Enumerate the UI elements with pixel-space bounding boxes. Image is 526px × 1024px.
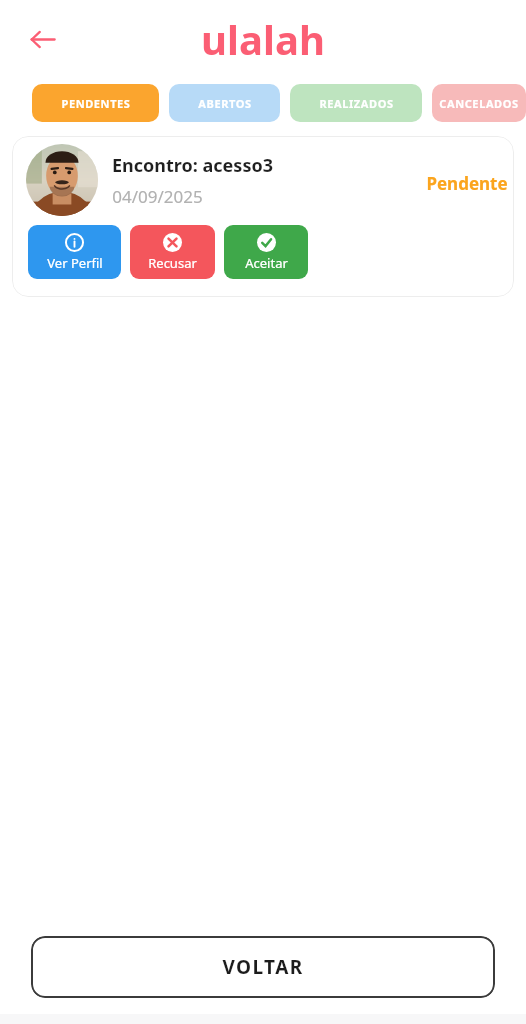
button[interactable]: Ver Perfil [28, 225, 121, 279]
staticText: Encontro: acesso3 [112, 153, 273, 178]
button[interactable]: VOLTAR [31, 936, 495, 998]
staticText: CANCELADOS [439, 96, 519, 111]
staticText: VOLTAR [222, 954, 304, 980]
staticText: Recusar [148, 254, 197, 272]
button[interactable]: Back [20, 17, 64, 61]
staticText: REALIZADOS [319, 96, 394, 111]
button[interactable]: Aceitar [224, 225, 308, 279]
staticText: ulalah [201, 12, 325, 66]
staticText: Aceitar [245, 254, 288, 272]
staticText: Pendente [426, 172, 508, 195]
button[interactable]: Pendente [12, 136, 514, 297]
staticText: 04/09/2025 [112, 185, 203, 208]
button[interactable]: CANCELADOS [432, 84, 526, 122]
button[interactable]: PENDENTES [32, 84, 159, 122]
staticText: PENDENTES [61, 96, 131, 111]
staticText: Ver Perfil [47, 254, 103, 272]
button[interactable]: ABERTOS [169, 84, 280, 122]
staticText: ABERTOS [198, 96, 252, 111]
button[interactable]: Recusar [130, 225, 215, 279]
button[interactable]: REALIZADOS [290, 84, 422, 122]
